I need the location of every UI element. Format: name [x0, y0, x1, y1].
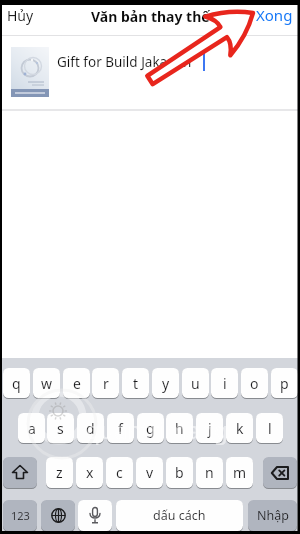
button[interactable]: d	[77, 413, 104, 443]
staticText: j	[208, 419, 212, 438]
button[interactable]: c	[106, 457, 133, 488]
staticText: a	[28, 419, 36, 438]
button[interactable]: g	[137, 413, 164, 443]
staticText: f	[118, 419, 123, 438]
staticText: u	[191, 374, 200, 393]
staticText: l	[268, 419, 272, 438]
staticText: c	[116, 463, 123, 482]
button[interactable]	[41, 500, 75, 531]
button[interactable]: k	[226, 413, 253, 443]
button[interactable]: w	[33, 368, 60, 398]
button[interactable]: o	[241, 368, 268, 398]
button[interactable]: b	[166, 457, 193, 488]
button[interactable]: 123	[3, 500, 37, 531]
staticText: b	[175, 463, 184, 482]
staticText: 123	[11, 508, 30, 523]
button[interactable]: q	[3, 368, 30, 398]
button[interactable]: t	[122, 368, 149, 398]
staticText: h	[175, 419, 184, 438]
staticText: Xong	[256, 5, 293, 25]
button[interactable]: p	[271, 368, 298, 398]
button[interactable]: Nhập	[248, 500, 297, 531]
button[interactable]: dấu cách	[116, 500, 243, 531]
staticText: dấu cách	[153, 507, 206, 524]
staticText: Văn bản thay thế	[91, 7, 210, 26]
staticText: g	[146, 419, 155, 438]
button[interactable]: i	[211, 368, 238, 398]
button[interactable]: m	[226, 457, 253, 488]
button[interactable]: x	[76, 457, 103, 488]
staticText: quantrimang	[86, 414, 228, 445]
button[interactable]: Xong	[256, 5, 293, 25]
staticText: Nhập	[257, 507, 289, 524]
button[interactable]: v	[136, 457, 163, 488]
button[interactable]: Hủy	[7, 6, 34, 25]
staticText: q	[12, 374, 21, 393]
button[interactable]: e	[63, 368, 90, 398]
staticText: d	[86, 419, 95, 438]
staticText: Hủy	[7, 6, 34, 25]
button[interactable]: f	[107, 413, 134, 443]
staticText: k	[236, 419, 244, 438]
staticText: o	[250, 374, 259, 393]
staticText: n	[205, 463, 214, 482]
staticText: i	[223, 374, 227, 393]
button[interactable]: y	[152, 368, 179, 398]
staticText: t	[133, 374, 139, 393]
button[interactable]	[78, 500, 112, 531]
button[interactable]: r	[92, 368, 119, 398]
staticText: e	[73, 374, 81, 393]
button[interactable]: j	[196, 413, 223, 443]
staticText: s	[57, 419, 64, 438]
button[interactable]: a	[18, 413, 45, 443]
button[interactable]: u	[182, 368, 209, 398]
staticText: w	[41, 374, 53, 393]
staticText: r	[103, 374, 109, 393]
staticText: x	[86, 463, 94, 482]
staticText: v	[146, 463, 154, 482]
button[interactable]: h	[166, 413, 193, 443]
button[interactable]: s	[47, 413, 74, 443]
button[interactable]: l	[256, 413, 283, 443]
staticText: Gift for Build Jakapan	[57, 53, 192, 71]
button[interactable]: n	[196, 457, 223, 488]
button[interactable]	[263, 457, 297, 488]
button[interactable]: z	[46, 457, 73, 488]
staticText: p	[280, 374, 289, 393]
button[interactable]	[3, 457, 37, 488]
staticText: m	[233, 463, 247, 482]
staticText: z	[56, 463, 63, 482]
staticText: y	[162, 374, 170, 393]
